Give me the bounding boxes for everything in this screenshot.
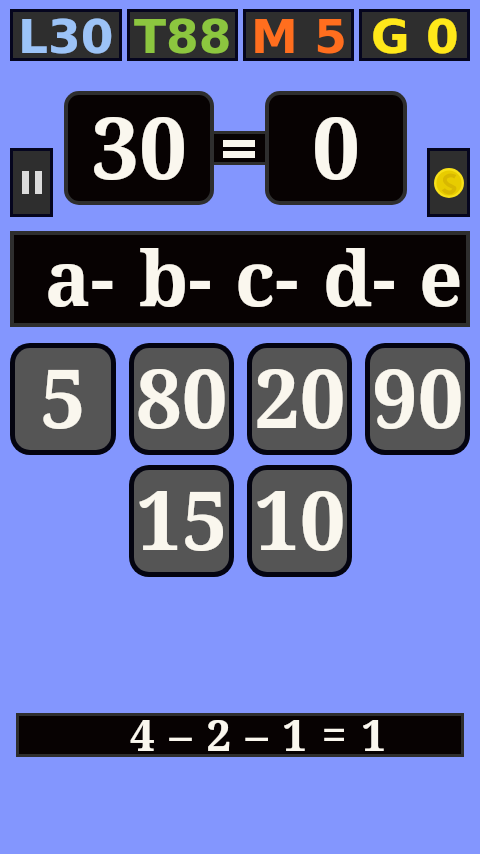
staticText: 0 xyxy=(312,95,361,201)
button[interactable]: Pause xyxy=(13,151,50,214)
button[interactable]: 80 xyxy=(134,348,229,450)
staticText: L30 xyxy=(18,9,114,64)
button[interactable]: Coins xyxy=(430,151,467,214)
button[interactable]: a- xyxy=(14,235,466,323)
staticText: 30 xyxy=(91,95,188,201)
button[interactable]: 0 xyxy=(269,95,403,201)
staticText: b- xyxy=(139,225,212,329)
staticText: 90 xyxy=(372,348,464,450)
staticText: 15 xyxy=(136,470,228,572)
staticText: 10 xyxy=(254,470,346,572)
button[interactable]: 15 xyxy=(134,470,229,572)
staticText: 5 xyxy=(40,348,86,450)
button[interactable]: 10 xyxy=(252,470,347,572)
staticText: M 5 xyxy=(251,9,347,64)
button[interactable]: 5 xyxy=(15,348,111,450)
button[interactable]: M 5 xyxy=(246,12,351,58)
button[interactable]: G 0 xyxy=(362,12,467,58)
button[interactable]: 30 xyxy=(68,95,210,201)
staticText: a- xyxy=(45,225,115,329)
button[interactable]: 20 xyxy=(252,348,347,450)
staticText: 4 – 2 – 1 = 1 xyxy=(130,704,388,764)
staticText: T88 xyxy=(134,9,232,64)
staticText: G 0 xyxy=(371,9,459,64)
staticText: d- xyxy=(323,225,396,329)
staticText: e xyxy=(419,225,463,329)
button[interactable]: 90 xyxy=(370,348,465,450)
button[interactable]: T88 xyxy=(130,12,235,58)
staticText: c- xyxy=(235,225,299,329)
button[interactable]: L30 xyxy=(13,12,119,58)
staticText: 20 xyxy=(254,348,346,450)
staticText: 80 xyxy=(136,348,228,450)
button[interactable]: 4 – 2 – 1 = 1 xyxy=(19,716,461,754)
